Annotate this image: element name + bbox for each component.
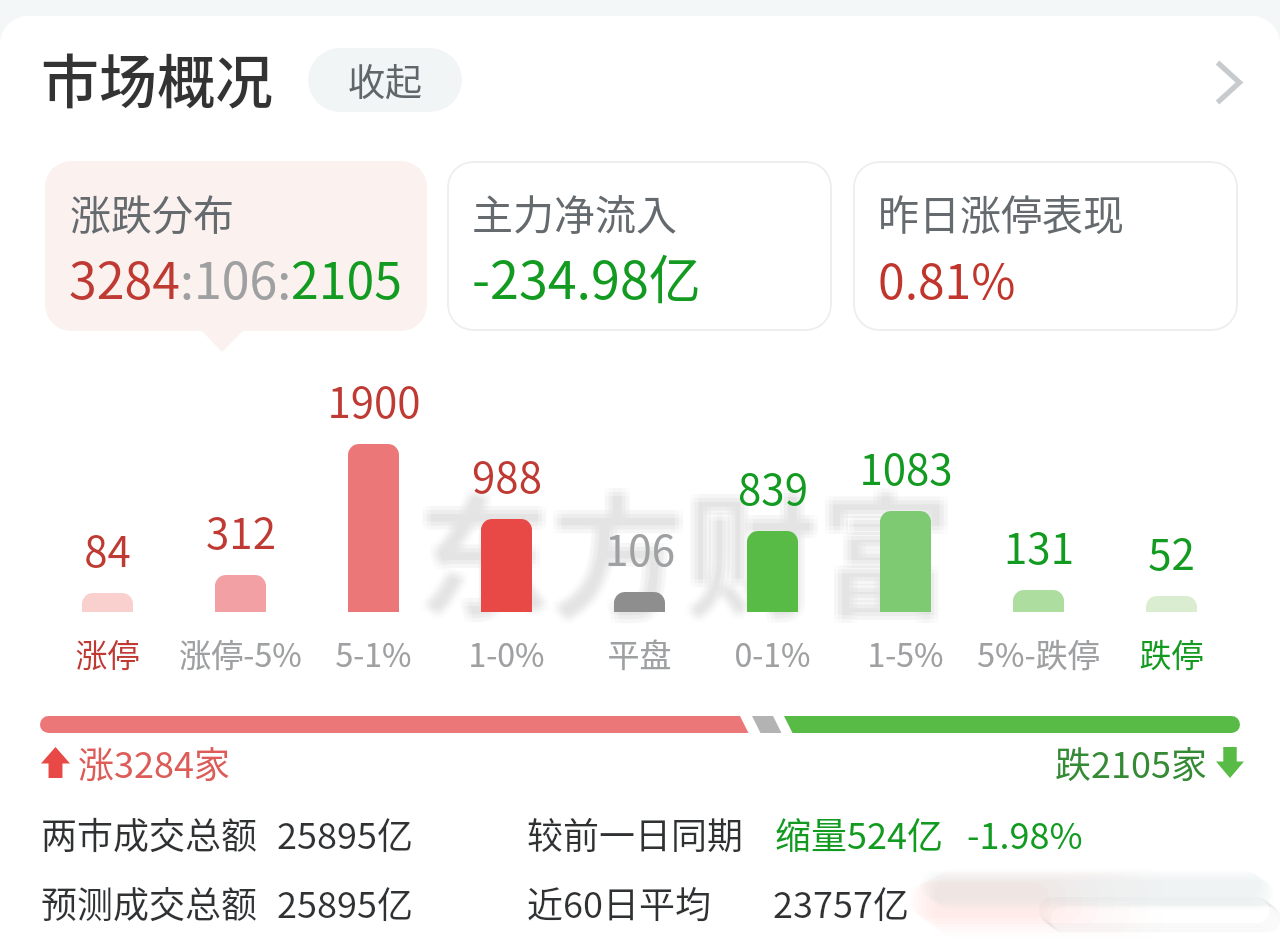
staticText: 市场概况 — [41, 36, 274, 120]
button[interactable]: 市场概况 — [41, 36, 274, 120]
staticText: 涨3284家 — [78, 736, 230, 788]
staticText: 涨停 — [75, 630, 140, 676]
staticText: 1900 — [327, 369, 421, 430]
staticText: 312 — [206, 500, 276, 561]
staticText: 涨停-5% — [179, 630, 302, 676]
staticText: 东方财富 — [417, 456, 954, 650]
staticText: 主力净流入 — [472, 182, 677, 241]
staticText: 平盘 — [607, 630, 672, 676]
button[interactable] — [574, 370, 705, 675]
button[interactable]: 主力净流入 — [447, 161, 832, 331]
staticText: 收起 — [348, 53, 422, 107]
staticText: 988 — [472, 444, 542, 505]
staticText: 0-1% — [734, 630, 811, 676]
staticText: 预测成交总额 — [41, 876, 258, 928]
staticText: 较前一日同期 — [527, 807, 744, 859]
staticText: 84 — [84, 518, 131, 579]
staticText: 近60日平均 — [527, 876, 711, 928]
staticText: 东方财富 — [417, 452, 954, 646]
button[interactable] — [1106, 370, 1237, 675]
staticText: 东方财富 — [413, 456, 950, 650]
staticText: 1-5% — [867, 630, 944, 676]
staticText: 52 — [1148, 521, 1195, 582]
staticText: 东方财富 — [413, 448, 950, 642]
staticText: 两市成交总额 — [41, 807, 258, 859]
button[interactable] — [42, 370, 173, 675]
staticText: 131 — [1004, 515, 1074, 576]
staticText: 5-1% — [335, 630, 412, 676]
staticText: 0.81% — [878, 243, 1016, 313]
button[interactable]: 涨跌分布 — [45, 161, 427, 331]
staticText: 东方财富 — [421, 456, 958, 650]
staticText: -234.98亿 — [472, 239, 701, 314]
staticText: 跌2105家 — [1055, 736, 1207, 788]
staticText: 839 — [738, 456, 808, 517]
staticText: 106 — [605, 517, 675, 578]
button[interactable] — [973, 370, 1104, 675]
staticText: 25895亿 — [277, 876, 413, 928]
button[interactable]: Open market overview — [1186, 40, 1270, 124]
staticText: -1.98% — [967, 807, 1083, 859]
staticText: 3284:106:2105 — [69, 241, 403, 313]
button[interactable] — [840, 370, 971, 675]
staticText: 跌停 — [1139, 630, 1204, 676]
staticText: 东方财富 — [421, 448, 958, 642]
staticText: 涨跌分布 — [70, 182, 234, 241]
staticText: 1-0% — [468, 630, 545, 676]
staticText: 缩量524亿 — [775, 807, 943, 859]
button[interactable]: 收起 — [308, 48, 462, 112]
staticText: 25895亿 — [277, 807, 413, 859]
staticText: 东方财富 — [421, 452, 958, 646]
staticText: 东方财富 — [417, 448, 954, 642]
staticText: 昨日涨停表现 — [878, 182, 1124, 241]
button[interactable] — [308, 370, 439, 675]
button[interactable] — [175, 370, 306, 675]
staticText: 东方财富 — [413, 452, 950, 646]
button[interactable] — [441, 370, 572, 675]
staticText: 5%-跌停 — [977, 630, 1100, 676]
staticText: 23757亿 — [773, 876, 909, 928]
button[interactable] — [707, 370, 838, 675]
staticText: 1083 — [859, 436, 953, 497]
button[interactable]: 昨日涨停表现 — [853, 161, 1238, 331]
